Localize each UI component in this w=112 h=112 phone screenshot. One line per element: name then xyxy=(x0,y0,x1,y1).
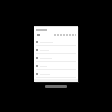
button[interactable]: Title xyxy=(34,26,78,82)
button[interactable] xyxy=(34,70,78,78)
button[interactable]: Caption xyxy=(45,85,67,88)
button[interactable] xyxy=(34,46,78,54)
button[interactable] xyxy=(34,38,78,46)
button[interactable] xyxy=(34,54,78,62)
button[interactable]: Title xyxy=(36,27,76,32)
button[interactable] xyxy=(34,62,78,70)
